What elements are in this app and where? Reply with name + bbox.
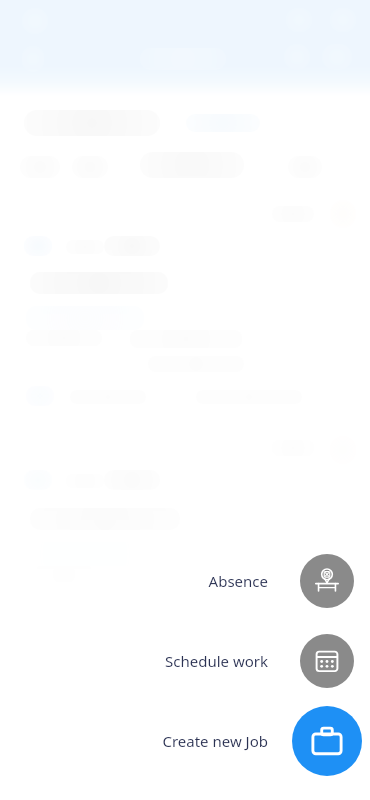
staticText: Schedule work [165, 651, 268, 671]
button[interactable]: Create new Job [292, 706, 362, 776]
button[interactable]: Absence [300, 554, 354, 608]
button[interactable]: Schedule work [300, 634, 354, 688]
staticText: Create new Job [162, 731, 268, 751]
button[interactable]: Create new Job [0, 731, 284, 751]
button[interactable]: Absence [0, 571, 284, 591]
button[interactable]: Schedule work [0, 651, 284, 671]
staticText: Absence [208, 571, 268, 591]
